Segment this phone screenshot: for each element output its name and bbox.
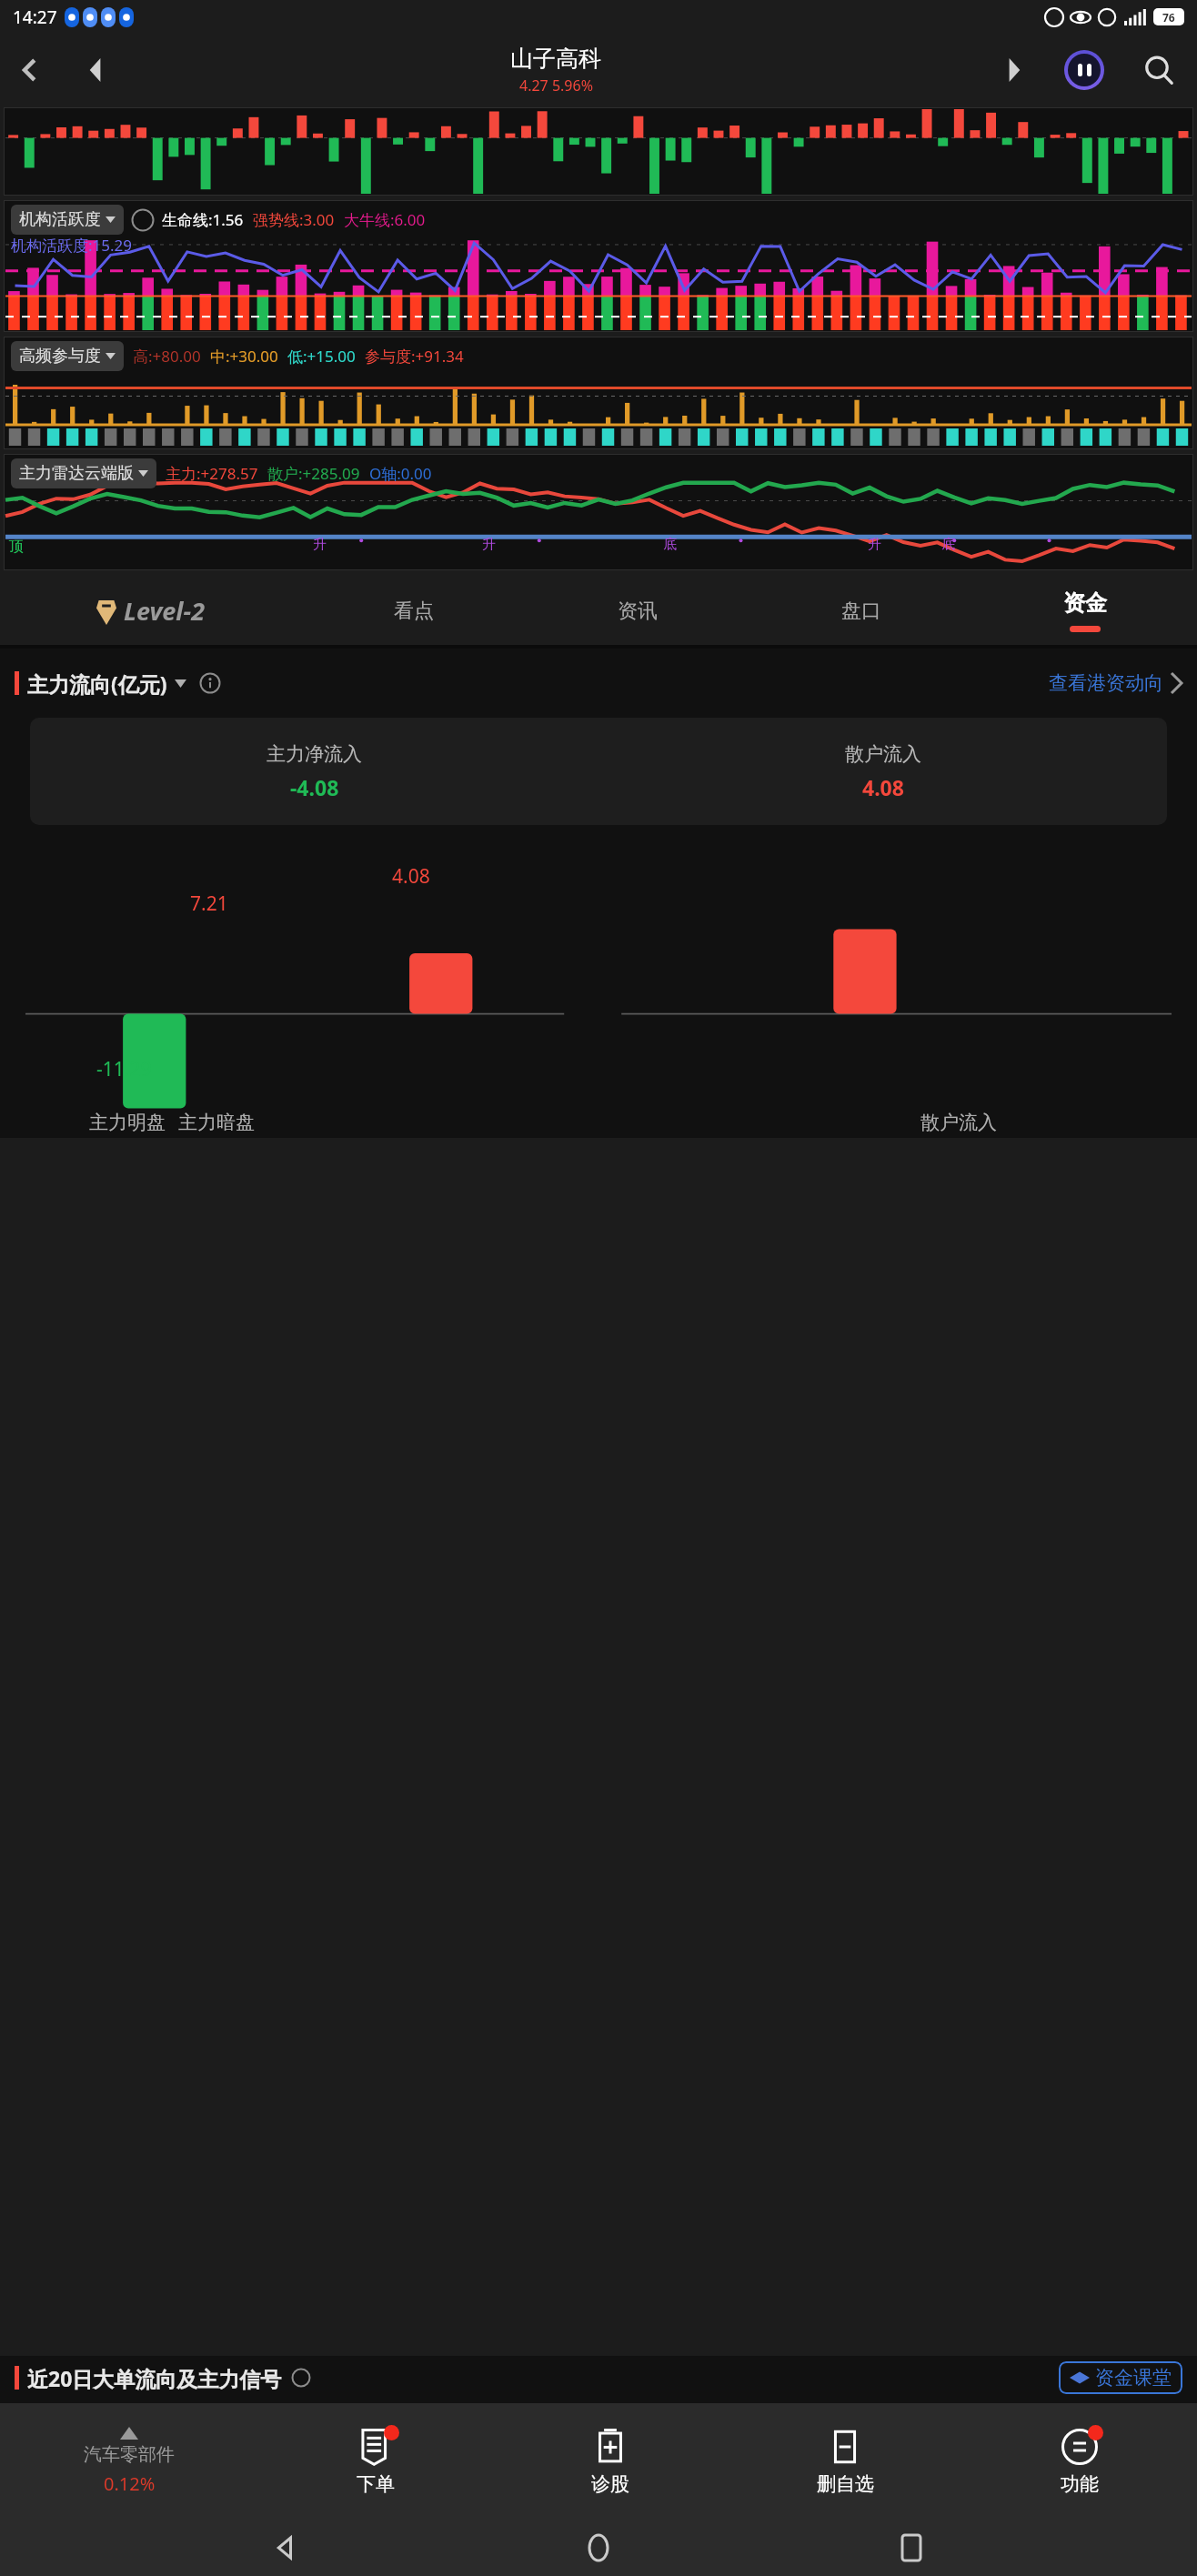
staticText: 升: [313, 536, 327, 553]
staticText: 散户流入: [920, 1111, 997, 1134]
button[interactable]: 资金: [973, 577, 1197, 645]
button[interactable]: 查看港资动向: [1049, 671, 1182, 695]
staticText: 机构活跃度:15.29: [11, 235, 133, 256]
button[interactable]: 诊股: [493, 2403, 728, 2520]
button[interactable]: 盘口: [749, 577, 973, 645]
button[interactable]: 资金课堂: [1059, 2361, 1182, 2394]
staticText: 76: [1162, 10, 1175, 25]
staticText: 主力:+278.57: [166, 463, 258, 484]
staticText: 主力流向(亿元): [27, 669, 167, 698]
button[interactable]: Info: [199, 672, 221, 694]
button[interactable]: Info: [291, 2368, 311, 2388]
staticText: 主力雷达云端版: [19, 463, 134, 484]
button[interactable]: 主力流向(亿元): [27, 669, 186, 698]
button[interactable]: Back: [0, 34, 60, 106]
staticText: 底: [663, 536, 677, 553]
staticText: 近20日大单流向及主力信号: [27, 2364, 282, 2392]
staticText: 0.12%: [104, 2471, 156, 2496]
button[interactable]: 功能: [962, 2403, 1197, 2520]
staticText: 强势线:3.00: [253, 209, 335, 230]
staticText: -11.29: [96, 1056, 152, 1082]
staticText: 4.08: [392, 863, 430, 890]
staticText: 下单: [357, 2472, 395, 2496]
button[interactable]: 主力雷达云端版: [11, 458, 156, 488]
button[interactable]: AI assistant: [1048, 34, 1121, 106]
staticText: 主力明盘: [89, 1111, 166, 1134]
button[interactable]: 主力净流入: [30, 718, 1167, 825]
staticText: 中:+30.00: [210, 346, 278, 367]
staticText: 升: [868, 536, 881, 553]
staticText: 功能: [1061, 2472, 1099, 2496]
staticText: Level-2: [124, 594, 206, 628]
staticText: 机构活跃度: [19, 209, 101, 230]
button[interactable]: 高频参与度: [11, 341, 124, 371]
staticText: 资金课堂: [1095, 2366, 1172, 2390]
staticText: 山子高科: [510, 45, 601, 73]
staticText: 7.21: [190, 891, 228, 917]
staticText: 主力净流入: [267, 742, 362, 766]
button[interactable]: 汽车零部件: [0, 2403, 258, 2520]
button[interactable]: Back: [258, 2521, 313, 2575]
staticText: 汽车零部件: [84, 2443, 175, 2466]
staticText: O轴:0.00: [369, 463, 432, 484]
staticText: 诊股: [591, 2472, 629, 2496]
staticText: 顶: [9, 538, 24, 556]
button[interactable]: Home: [571, 2521, 626, 2575]
staticText: 14:27: [13, 5, 57, 29]
button[interactable]: 下单: [258, 2403, 493, 2520]
button[interactable]: 删自选: [728, 2403, 962, 2520]
staticText: 底: [941, 536, 955, 553]
button[interactable]: Next stock: [981, 34, 1048, 106]
staticText: 资讯: [618, 599, 658, 624]
button[interactable]: 山子高科: [131, 45, 981, 96]
button[interactable]: 看点: [302, 577, 526, 645]
staticText: 低:+15.00: [287, 346, 356, 367]
button[interactable]: Help: [131, 208, 155, 232]
staticText: 散户流入: [845, 742, 921, 766]
staticText: 主力暗盘: [178, 1111, 255, 1134]
staticText: 散户:+285.09: [267, 463, 360, 484]
button[interactable]: 资讯: [526, 577, 749, 645]
button[interactable]: [4, 107, 1193, 196]
staticText: 盘口: [841, 599, 881, 624]
staticText: 高频参与度: [19, 346, 101, 367]
staticText: 4.27 5.96%: [519, 75, 593, 96]
staticText: 资金: [1063, 589, 1107, 617]
button[interactable]: Search: [1121, 34, 1197, 106]
staticText: 大牛线:6.00: [344, 209, 426, 230]
staticText: 升: [482, 536, 496, 553]
staticText: 高:+80.00: [133, 346, 201, 367]
staticText: 4.08: [862, 773, 904, 801]
staticText: 生命线:1.56: [162, 209, 244, 230]
staticText: 删自选: [817, 2472, 874, 2496]
staticText: 看点: [394, 599, 434, 624]
button[interactable]: Recents: [884, 2521, 939, 2575]
staticText: 查看港资动向: [1049, 671, 1163, 695]
staticText: 参与度:+91.34: [365, 346, 464, 367]
staticText: -4.08: [290, 773, 339, 801]
button[interactable]: 机构活跃度: [11, 205, 124, 235]
button[interactable]: Level-2: [0, 577, 302, 645]
button[interactable]: Previous stock: [60, 34, 131, 106]
